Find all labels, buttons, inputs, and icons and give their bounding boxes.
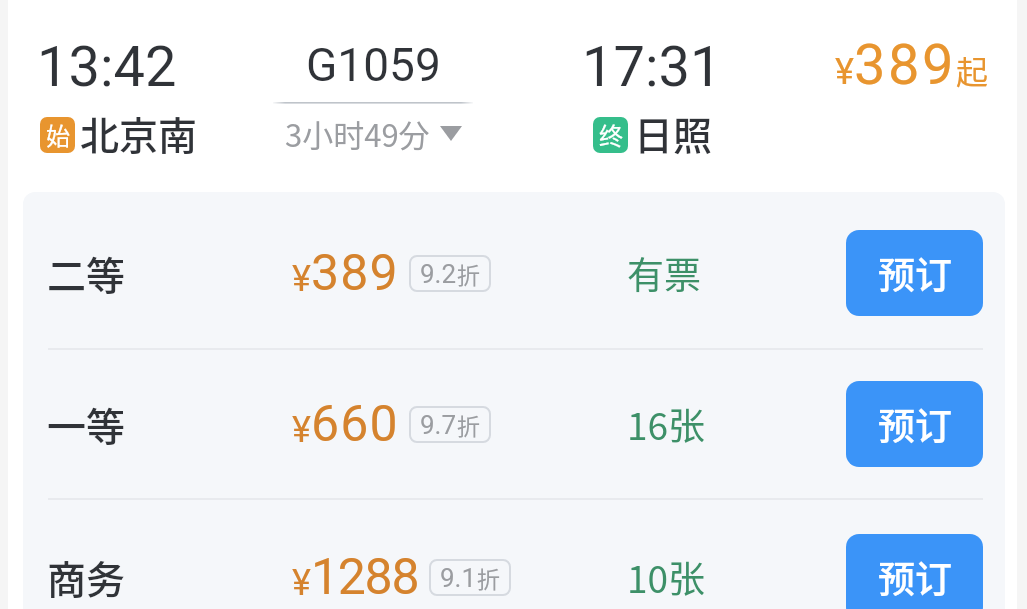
staticText: 起 xyxy=(956,47,989,93)
staticText: ¥ xyxy=(292,562,311,604)
staticText: 16张 xyxy=(627,397,706,451)
staticText: 日照 xyxy=(634,105,713,161)
staticText: 389 xyxy=(854,32,956,98)
staticText: 始 xyxy=(46,117,70,152)
button[interactable]: 9.1 xyxy=(440,559,500,596)
staticText: 9.2 xyxy=(420,259,457,289)
staticText: 一等 xyxy=(47,396,126,452)
button[interactable]: 13:42 xyxy=(37,34,195,163)
staticText: ¥ xyxy=(292,409,311,451)
staticText: 9.7 xyxy=(420,410,457,440)
button[interactable]: 预订 xyxy=(846,230,983,316)
staticText: ¥ xyxy=(292,258,311,300)
staticText: 有票 xyxy=(627,246,701,300)
staticText: 二等 xyxy=(47,245,126,301)
staticText: 商务 xyxy=(47,549,126,605)
button[interactable] xyxy=(23,498,1005,609)
staticText: 预订 xyxy=(878,397,952,451)
staticText: 9.1 xyxy=(440,563,477,593)
staticText: 389 xyxy=(311,244,399,303)
staticText: 1288 xyxy=(311,548,419,607)
staticText: 北京南 xyxy=(80,105,198,161)
button[interactable] xyxy=(23,195,1005,351)
staticText: 13:42 xyxy=(37,34,177,100)
staticText: 预订 xyxy=(878,550,952,604)
staticText: 预订 xyxy=(878,246,952,300)
staticText: 660 xyxy=(311,395,399,454)
staticText: 折 xyxy=(457,408,480,441)
button[interactable]: 17:31 xyxy=(582,34,722,163)
staticText: G1059 xyxy=(306,38,441,92)
staticText: 终 xyxy=(599,117,623,152)
button[interactable]: 9.2 xyxy=(420,255,480,292)
button[interactable]: Show stops, 3 hours 49 minutes xyxy=(285,111,462,156)
button[interactable]: ¥ xyxy=(835,32,989,98)
button[interactable]: 预订 xyxy=(846,534,983,609)
staticText: 17:31 xyxy=(582,34,722,100)
staticText: 3小时49分 xyxy=(285,111,430,156)
staticText: 折 xyxy=(477,561,500,594)
button[interactable] xyxy=(23,348,1005,500)
button[interactable]: 9.7 xyxy=(420,406,480,443)
staticText: 折 xyxy=(457,257,480,290)
staticText: 10张 xyxy=(627,550,706,604)
button[interactable]: 预订 xyxy=(846,381,983,467)
staticText: ¥ xyxy=(835,51,854,93)
